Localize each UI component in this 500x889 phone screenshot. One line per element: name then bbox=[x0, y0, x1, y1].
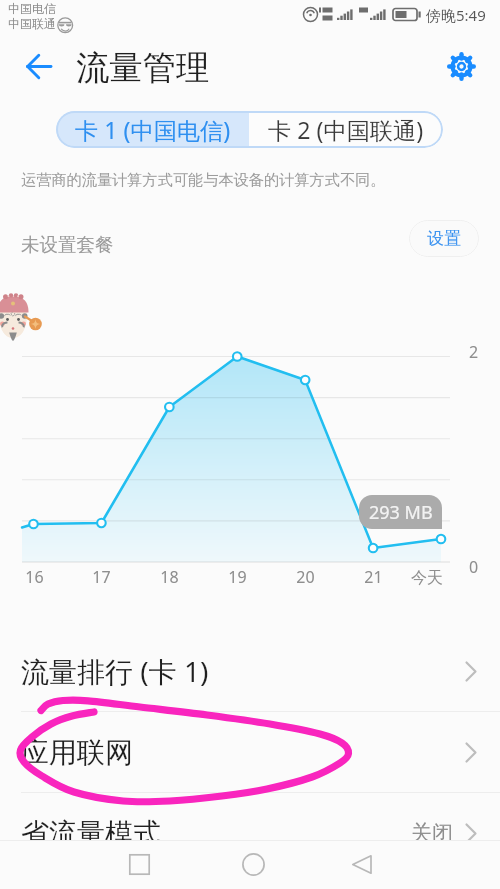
button[interactable]: Settings bbox=[439, 44, 484, 89]
staticText: 卡 1 (中国电信) bbox=[75, 114, 231, 146]
button[interactable]: Back bbox=[331, 840, 391, 889]
staticText: 20 bbox=[296, 566, 315, 588]
staticText: 今天 bbox=[411, 568, 443, 588]
staticText: 17 bbox=[92, 566, 111, 588]
button[interactable]: 卡 2 (中国联通) bbox=[249, 111, 443, 148]
button[interactable]: 省流量模式 bbox=[0, 793, 500, 873]
staticText: 19 bbox=[228, 566, 247, 588]
staticText: 卡 2 (中国联通) bbox=[268, 114, 424, 146]
staticText: 设置 bbox=[427, 228, 461, 249]
staticText: 未设置套餐 bbox=[21, 233, 114, 256]
staticText: 2 bbox=[469, 341, 479, 363]
staticText: 中国电信 bbox=[8, 1, 56, 16]
button[interactable]: 设置 bbox=[409, 220, 479, 257]
staticText: 傍晚5:49 bbox=[426, 5, 486, 25]
button[interactable]: 卡 1 (中国电信) bbox=[56, 111, 249, 148]
staticText: 18 bbox=[160, 566, 179, 588]
staticText: 293 MB bbox=[369, 500, 433, 525]
staticText: 0 bbox=[469, 556, 479, 578]
staticText: 省流量模式 bbox=[21, 816, 161, 851]
button[interactable]: Back bbox=[13, 44, 64, 89]
staticText: 应用联网 bbox=[21, 735, 133, 770]
button[interactable]: Home bbox=[223, 840, 283, 889]
button[interactable]: Recents bbox=[109, 840, 169, 889]
staticText: 21 bbox=[364, 566, 383, 588]
staticText: 16 bbox=[25, 566, 44, 588]
staticText: 中国联通 bbox=[8, 16, 56, 31]
staticText: 流量排行 (卡 1) bbox=[21, 652, 209, 690]
button[interactable]: 应用联网 bbox=[0, 712, 500, 792]
staticText: 运营商的流量计算方式可能与本设备的计算方式不同。 bbox=[21, 170, 386, 189]
staticText: 关闭 bbox=[411, 820, 453, 846]
button[interactable]: 流量排行 (卡 1) bbox=[0, 631, 500, 711]
staticText: 流量管理 bbox=[76, 47, 210, 89]
